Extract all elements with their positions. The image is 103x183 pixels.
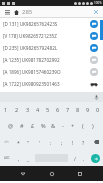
staticText: 6 xyxy=(56,106,60,114)
staticText: ( xyxy=(82,122,84,130)
button[interactable]: Menu xyxy=(3,8,11,16)
staticText: 4 xyxy=(36,106,40,114)
staticText: - xyxy=(62,122,64,130)
button[interactable]: Home xyxy=(12,8,20,16)
button[interactable]: 4 xyxy=(33,102,43,118)
staticText: 1 xyxy=(4,106,8,114)
button[interactable]: ABC xyxy=(0,150,14,166)
staticText: % xyxy=(41,122,46,130)
button[interactable]: 2 xyxy=(11,102,22,118)
button[interactable]: & xyxy=(48,118,58,134)
button[interactable]: , xyxy=(14,150,24,166)
staticText: ; xyxy=(61,139,63,146)
button[interactable]: / xyxy=(70,150,79,166)
staticText: 9 xyxy=(86,106,90,114)
button[interactable]: [D 131] UK98265762423S xyxy=(0,18,103,30)
button[interactable]: ! xyxy=(67,134,78,150)
staticText: @ xyxy=(8,122,14,130)
button[interactable]: [V 178] UK98265721235Z xyxy=(0,30,103,42)
button[interactable]: 5 xyxy=(43,102,53,118)
button[interactable]: - xyxy=(58,118,68,134)
button[interactable]: 7 xyxy=(63,102,73,118)
staticText: 100% xyxy=(94,1,102,5)
button[interactable]: [D 235] UK98265792482L xyxy=(0,42,103,54)
button[interactable]: £ xyxy=(27,118,38,134)
button[interactable]: [A 1896] UK98157460239O xyxy=(0,66,103,78)
staticText: + xyxy=(71,122,75,130)
staticText: , xyxy=(18,155,20,162)
staticText: 285 xyxy=(22,8,33,16)
staticText: [V 178] UK98265721235Z xyxy=(3,33,89,39)
button[interactable]: Enter xyxy=(88,150,103,166)
button[interactable]: ? xyxy=(78,134,89,150)
staticText: . xyxy=(83,155,85,162)
staticText: _ xyxy=(27,155,30,162)
button[interactable]: 6 xyxy=(53,102,63,118)
staticText: =\< xyxy=(4,140,9,144)
button[interactable]: _ xyxy=(24,150,33,166)
staticText: 5 xyxy=(46,106,50,114)
button[interactable]: . xyxy=(79,150,88,166)
button[interactable]: * xyxy=(13,134,23,150)
button[interactable]: ' xyxy=(34,134,45,150)
button[interactable]: 0 xyxy=(93,102,103,118)
staticText: * xyxy=(17,139,20,146)
button[interactable]: 9 xyxy=(83,102,93,118)
staticText: ' xyxy=(39,139,41,146)
button[interactable]: Recents xyxy=(74,168,86,180)
staticText: 7 xyxy=(66,106,70,114)
staticText: 8 xyxy=(76,106,80,114)
button[interactable]: # xyxy=(16,118,27,134)
staticText: 3 xyxy=(26,106,30,114)
button[interactable]: : xyxy=(45,134,56,150)
staticText: & xyxy=(51,122,56,130)
staticText: [D 131] UK98265762423S xyxy=(3,21,89,27)
staticText: [A 1722] UK980923501463 xyxy=(3,81,89,87)
button[interactable]: [A 1235] UK981782702992 xyxy=(0,54,103,66)
button[interactable]: =\< xyxy=(0,134,13,150)
staticText: " xyxy=(27,139,30,146)
staticText: [A 1896] UK98157460239O xyxy=(3,69,89,75)
button[interactable]: " xyxy=(23,134,34,150)
button[interactable]: 8 xyxy=(73,102,83,118)
staticText: # xyxy=(20,122,24,130)
button[interactable]: 1 xyxy=(0,102,11,118)
staticText: [A 1235] UK981782702992 xyxy=(3,57,89,63)
staticText: [D 235] UK98265792482L xyxy=(3,45,89,51)
staticText: £ xyxy=(31,122,35,130)
staticText: 2 xyxy=(15,106,19,114)
button[interactable]: Clear xyxy=(92,8,100,16)
staticText: ) xyxy=(92,122,94,130)
staticText: ABC xyxy=(4,156,10,160)
button[interactable]: Home xyxy=(46,168,58,180)
button[interactable]: + xyxy=(68,118,78,134)
staticText: 0 xyxy=(96,106,100,114)
staticText: ! xyxy=(72,139,74,146)
button[interactable]: Back xyxy=(17,168,29,180)
button[interactable]: [A 1722] UK980923501463 xyxy=(0,78,103,90)
button[interactable]: @ xyxy=(5,118,16,134)
staticText: ? xyxy=(82,139,85,146)
button[interactable]: % xyxy=(38,118,48,134)
staticText: : xyxy=(50,139,52,146)
button[interactable]: Voice input xyxy=(92,93,100,101)
button[interactable]: 3 xyxy=(22,102,33,118)
button[interactable] xyxy=(69,92,103,102)
staticText: / xyxy=(74,155,76,162)
button[interactable]: ) xyxy=(88,118,98,134)
button[interactable]: Backspace xyxy=(89,134,103,150)
button[interactable]: ; xyxy=(56,134,67,150)
button[interactable]: ( xyxy=(78,118,88,134)
